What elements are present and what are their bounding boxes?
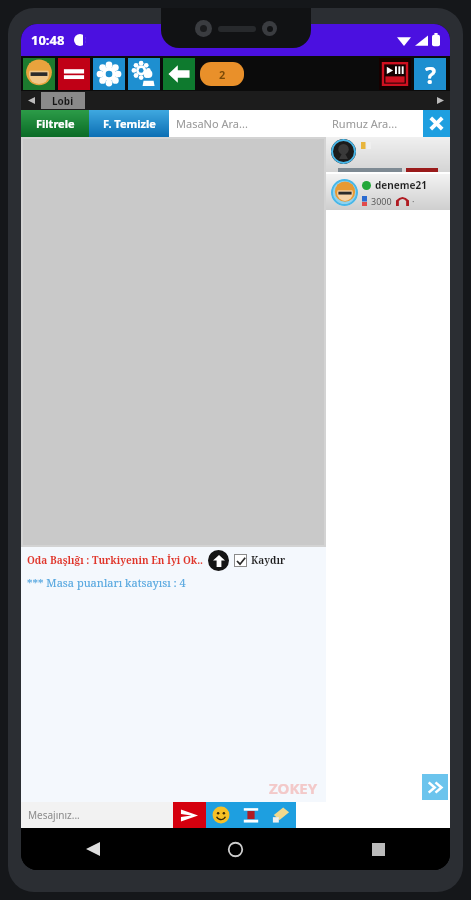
staticText: 2 — [219, 67, 226, 82]
staticText: *** Masa puanları katsayısı : 4 — [27, 575, 186, 590]
button[interactable]: Hediye — [236, 802, 266, 828]
staticText: MasaNo Ara... — [176, 116, 248, 131]
button[interactable]: Sonraki — [430, 91, 450, 110]
button[interactable]: Yukarı — [208, 550, 229, 571]
button[interactable]: Son uygulamalar — [307, 828, 450, 870]
staticText: Lobi — [52, 94, 74, 108]
button[interactable]: Ayarlar — [93, 58, 125, 90]
button[interactable] — [326, 137, 450, 172]
button[interactable]: Ana ekran — [164, 828, 307, 870]
button[interactable]: Emoji — [206, 802, 236, 828]
staticText: Filtrele — [36, 116, 75, 131]
button[interactable]: Video — [379, 58, 411, 90]
button[interactable]: Geri — [21, 828, 164, 870]
button[interactable]: Temizle — [266, 802, 296, 828]
staticText: Rumuz Ara... — [332, 116, 398, 131]
staticText: Mesajınız... — [28, 808, 80, 822]
button[interactable]: Genişlet — [422, 774, 448, 800]
staticText: deneme21 — [375, 178, 427, 192]
staticText: F. Temizle — [103, 116, 156, 131]
staticText: Oda Başlığı : Turkiyenin En İyi Ok.. — [27, 553, 204, 567]
staticText: · — [412, 195, 415, 207]
button[interactable]: Rumuz Ara... — [332, 110, 423, 137]
staticText: Kaydır — [251, 553, 286, 567]
staticText: ZOKEY — [269, 778, 318, 798]
button[interactable]: 2 — [200, 62, 244, 86]
button[interactable]: Profil — [23, 58, 55, 90]
staticText: ? — [425, 59, 436, 90]
button[interactable]: Gönder — [173, 802, 206, 828]
button[interactable]: Mesajınız... — [28, 802, 173, 828]
button[interactable]: MasaNo Ara... — [176, 110, 326, 137]
staticText: 10:48 — [31, 31, 65, 49]
button[interactable]: F. Temizle — [89, 110, 169, 137]
button[interactable]: Filtrele — [21, 110, 89, 137]
staticText: 3000 — [371, 195, 392, 207]
button[interactable]: Kullanıcı ayarları — [128, 58, 160, 90]
button[interactable]: Sessize al — [58, 58, 90, 90]
button[interactable]: deneme21 — [326, 174, 450, 210]
button[interactable]: Önceki — [21, 91, 41, 110]
button[interactable]: Lobi — [52, 92, 74, 109]
button[interactable]: Geri — [163, 58, 195, 90]
button[interactable]: Yardım — [414, 58, 446, 90]
button[interactable]: Kapat — [423, 110, 450, 137]
button[interactable]: Kaydır — [234, 553, 286, 567]
